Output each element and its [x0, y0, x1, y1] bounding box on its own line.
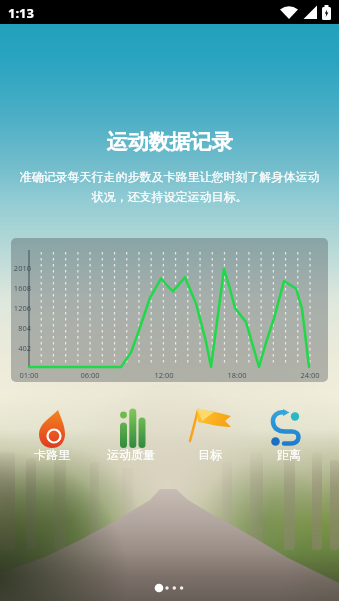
staticText: 运动数据记录: [0, 129, 339, 155]
staticText: 06:00: [75, 370, 105, 380]
staticText: 12:00: [149, 370, 179, 380]
staticText: 卡路里: [34, 447, 70, 462]
staticText: 402: [3, 343, 31, 353]
staticText: 2010: [3, 263, 31, 273]
staticText: 1608: [3, 283, 31, 293]
staticText: 运动质量: [107, 447, 155, 462]
button[interactable]: 运动质量: [91, 403, 171, 462]
staticText: 距离: [277, 447, 301, 462]
staticText: 01:00: [14, 370, 44, 380]
staticText: 目标: [198, 447, 222, 462]
staticText: 1206: [3, 303, 31, 313]
staticText: 804: [3, 323, 31, 333]
staticText: 1:13: [8, 4, 34, 22]
staticText: 24:00: [295, 370, 325, 380]
button[interactable]: 距离: [249, 403, 329, 462]
staticText: 准确记录每天行走的步数及卡路里让您时刻了解身体运动 状况，还支持设定运动目标。: [0, 169, 339, 204]
button[interactable]: 目标: [170, 403, 250, 462]
staticText: 18:00: [222, 370, 252, 380]
button[interactable]: 卡路里: [12, 403, 92, 462]
